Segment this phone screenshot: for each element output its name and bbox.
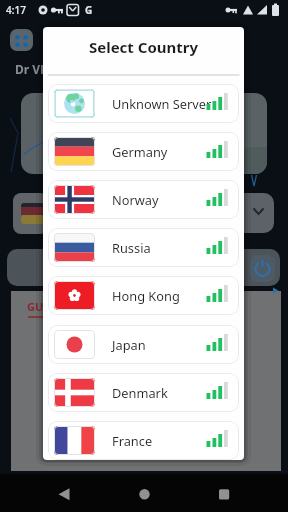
staticText: GU xyxy=(27,299,44,314)
staticText: Dr VPN xyxy=(15,61,58,77)
button[interactable]: Denmark xyxy=(48,373,239,412)
staticText: Russia xyxy=(112,239,151,256)
button[interactable]: Hong Kong xyxy=(48,276,239,315)
button[interactable]: Unknown Server xyxy=(48,84,239,123)
button[interactable] xyxy=(48,478,80,510)
button[interactable] xyxy=(10,29,33,51)
staticText: G xyxy=(85,3,93,17)
staticText: 4:17 xyxy=(6,3,26,17)
staticText: Select Country xyxy=(43,37,244,57)
button[interactable]: Norway xyxy=(48,180,239,219)
button[interactable] xyxy=(250,255,275,282)
staticText: Norway xyxy=(112,191,159,208)
button[interactable]: Russia xyxy=(48,228,239,267)
button[interactable]: France xyxy=(48,421,239,460)
button[interactable] xyxy=(233,193,274,233)
staticText: Hong Kong xyxy=(112,287,180,304)
staticText: Denmark xyxy=(112,384,168,401)
staticText: Germany xyxy=(112,143,168,160)
button[interactable]: Germany xyxy=(48,132,239,171)
button[interactable] xyxy=(208,478,240,510)
staticText: France xyxy=(112,432,153,449)
button[interactable] xyxy=(128,478,160,510)
staticText: Unknown Server xyxy=(112,95,212,112)
button[interactable]: Japan xyxy=(48,325,239,364)
staticText: Japan xyxy=(112,336,146,353)
